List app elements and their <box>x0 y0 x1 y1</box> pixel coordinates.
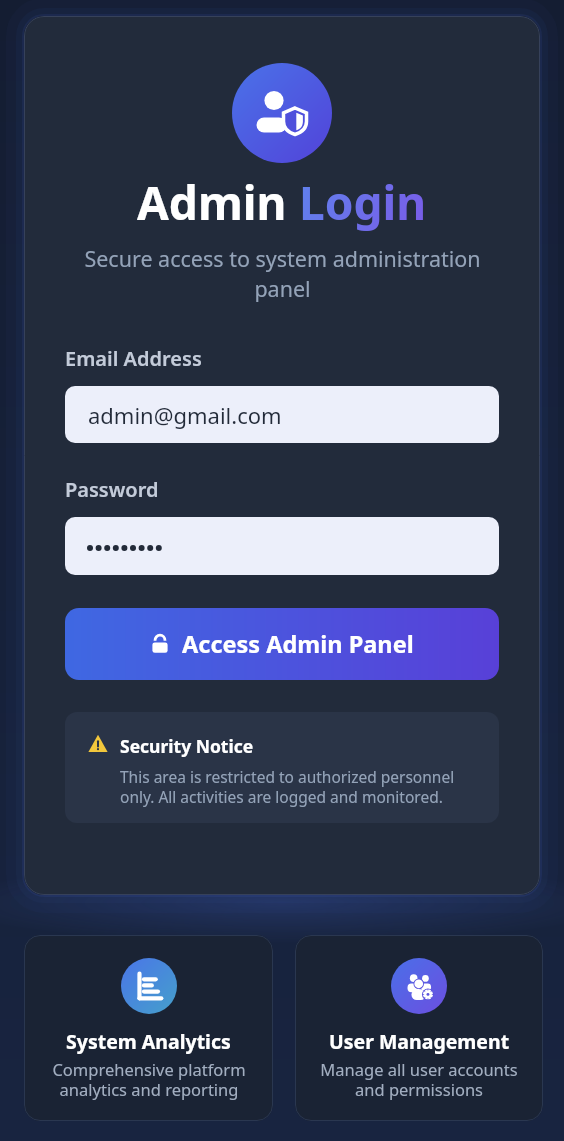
staticText: Login <box>299 171 427 234</box>
button[interactable]: User Management <box>295 935 543 1121</box>
staticText: This area is restricted to authorized pe… <box>120 766 455 808</box>
staticText: Password <box>65 476 159 503</box>
staticText: Comprehensive platform analytics and rep… <box>52 1058 246 1101</box>
button[interactable] <box>65 517 499 575</box>
staticText: Manage all user accounts and permissions <box>320 1058 518 1101</box>
button[interactable]: admin@gmail.com <box>65 386 499 443</box>
staticText: Admin <box>137 171 299 234</box>
button[interactable]: System Analytics <box>24 935 273 1121</box>
staticText: Email Address <box>65 345 202 372</box>
button[interactable]: Access Admin Panel <box>65 608 499 680</box>
staticText: Secure access to system administration p… <box>84 244 481 303</box>
staticText: User Management <box>329 1028 510 1055</box>
staticText: Security Notice <box>120 734 254 758</box>
staticText: System Analytics <box>66 1028 231 1055</box>
staticText: admin@gmail.com <box>88 400 282 430</box>
staticText: Access Admin Panel <box>182 628 414 660</box>
